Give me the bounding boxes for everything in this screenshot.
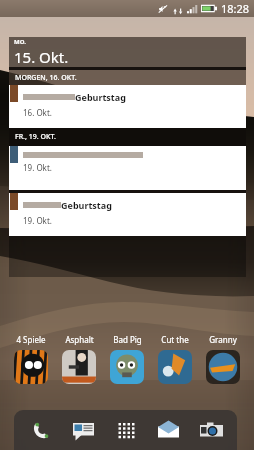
button[interactable]: Camera (195, 414, 227, 446)
button[interactable]: All apps (110, 414, 142, 446)
button[interactable]: Asphalt (62, 334, 96, 384)
button[interactable]: MO. (9, 37, 246, 67)
staticText: Asphalt (65, 334, 94, 345)
staticText: 15. Okt. (14, 47, 69, 67)
staticText: 4 Spiele (16, 334, 46, 345)
button[interactable]: Geburtstag (9, 85, 246, 128)
staticText: Granny (209, 334, 237, 345)
staticText: Geburtstag (75, 91, 126, 103)
button[interactable]: 4 Spiele (14, 334, 48, 384)
staticText: Geburtstag (61, 199, 112, 211)
staticText: Bad Pig (113, 334, 142, 345)
staticText: 19. Okt. (23, 162, 52, 173)
button[interactable]: Geburtstag (9, 193, 246, 236)
button[interactable]: Mail (152, 414, 184, 446)
staticText: Cut the (161, 334, 189, 345)
button[interactable]: Messages (67, 414, 99, 446)
button[interactable]: 19. Okt. (9, 146, 246, 190)
staticText: 18:28 (221, 1, 250, 16)
button[interactable]: Phone (25, 414, 57, 446)
button[interactable]: Granny (206, 334, 240, 384)
button[interactable]: Cut the (158, 334, 192, 384)
staticText: FR., 19. OKT. (15, 132, 56, 142)
staticText: 19. Okt. (23, 215, 52, 226)
staticText: 16. Okt. (23, 107, 52, 118)
button[interactable]: Bad Pig (110, 334, 144, 384)
staticText: MORGEN, 16. OKT. (15, 73, 77, 83)
staticText: MO. (14, 38, 26, 46)
